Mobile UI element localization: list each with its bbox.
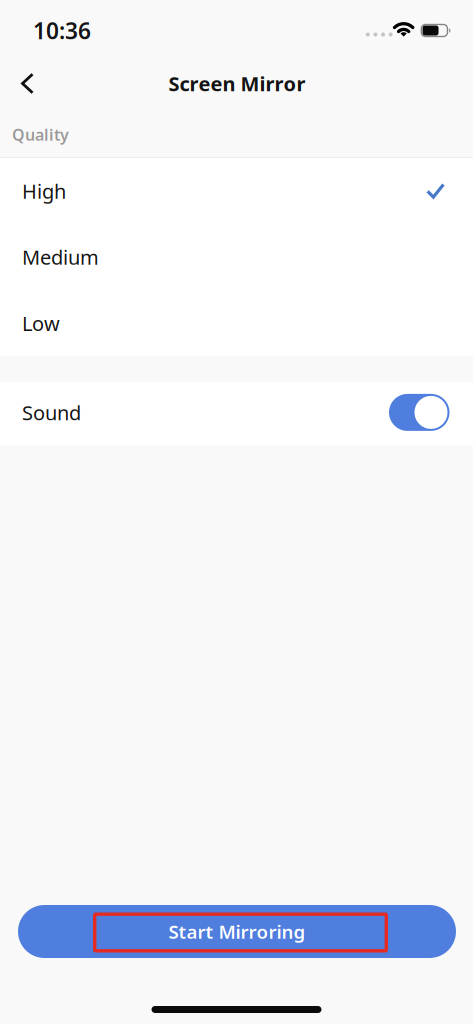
staticText: Sound (22, 399, 81, 426)
staticText: Start Mirroring (168, 919, 305, 944)
button[interactable]: Start Mirroring (18, 905, 456, 958)
staticText: Screen Mirror (168, 70, 305, 97)
button[interactable]: Sound (389, 395, 449, 432)
staticText: Low (22, 310, 60, 337)
staticText: High (22, 178, 66, 204)
staticText: Quality (12, 124, 69, 145)
button[interactable]: High (0, 158, 473, 224)
button[interactable]: Low (0, 290, 473, 356)
button[interactable]: Back (13, 65, 42, 102)
staticText: Medium (22, 244, 99, 270)
button[interactable]: Medium (0, 224, 473, 290)
staticText: 10:36 (33, 15, 91, 45)
